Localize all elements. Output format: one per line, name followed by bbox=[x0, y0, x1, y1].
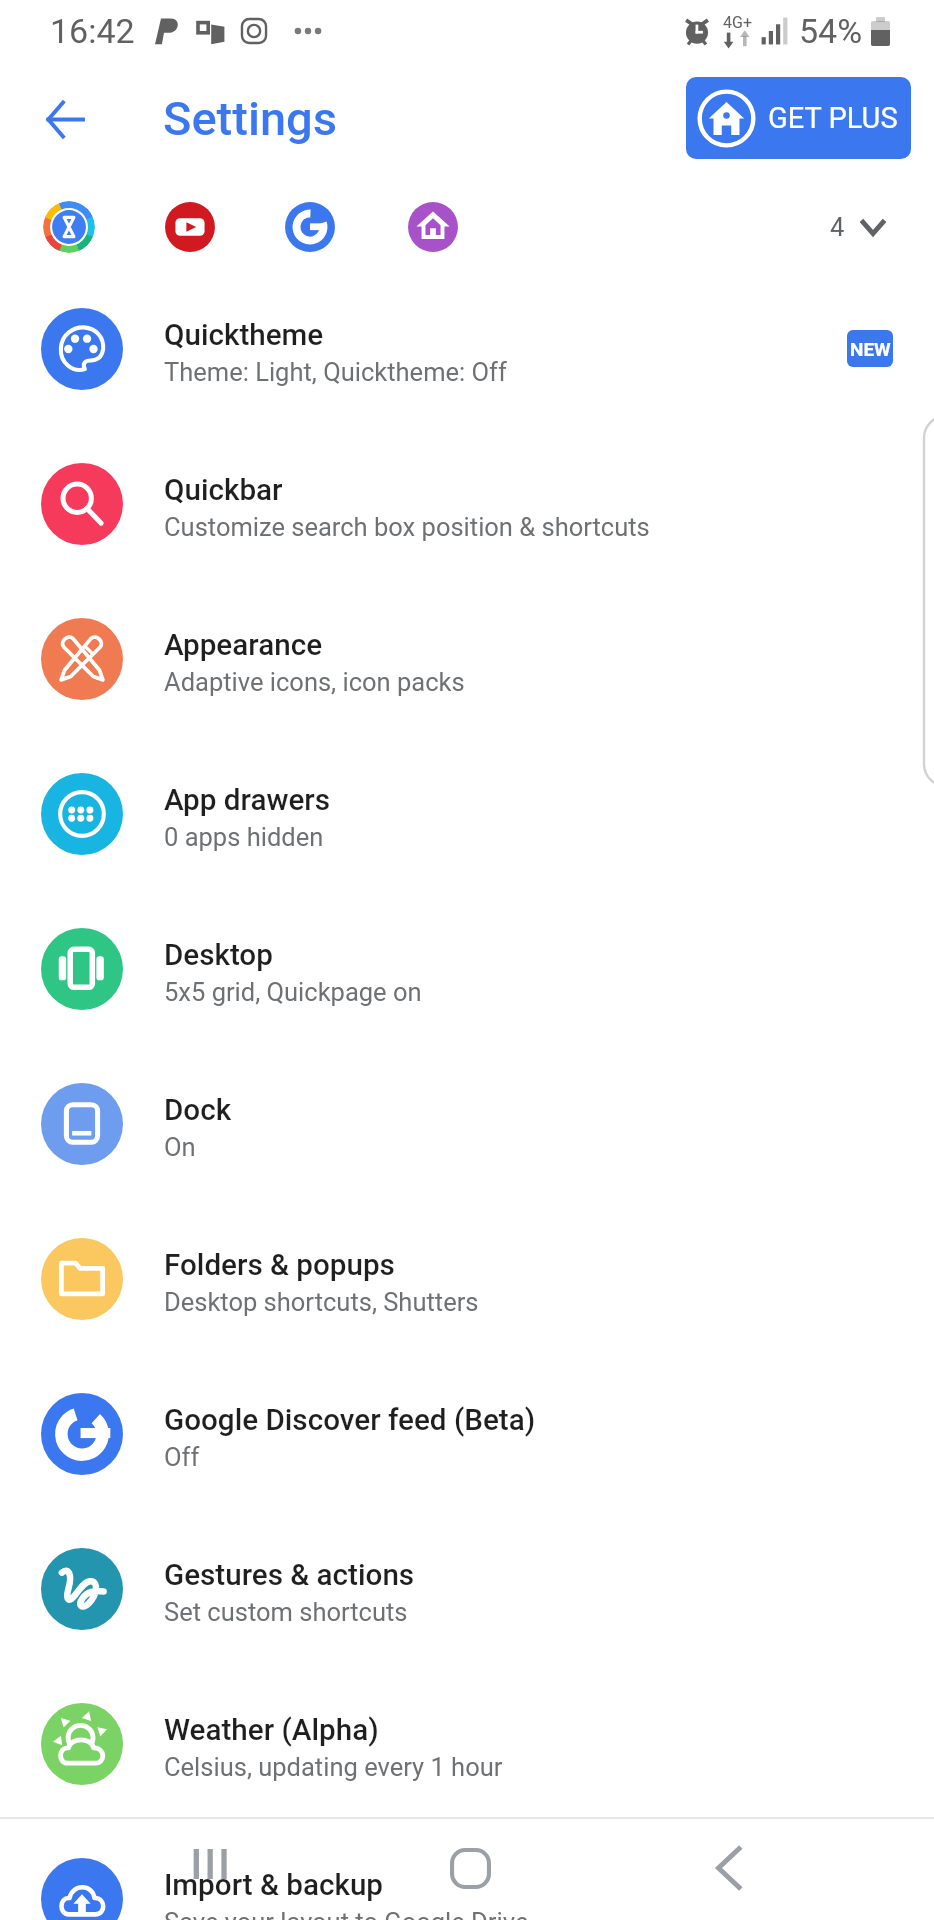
button[interactable]: Dock bbox=[0, 1046, 934, 1201]
staticText: GET PLUS bbox=[768, 101, 898, 135]
staticText: App drawers bbox=[164, 783, 330, 818]
button[interactable]: Quicktheme bbox=[0, 271, 934, 426]
staticText: Dock bbox=[164, 1093, 232, 1128]
button[interactable]: Desktop bbox=[0, 891, 934, 1046]
staticText: Adaptive icons, icon packs bbox=[164, 667, 465, 697]
staticText: Settings bbox=[163, 91, 338, 146]
staticText: 5x5 grid, Quickpage on bbox=[164, 977, 422, 1007]
staticText: Weather (Alpha) bbox=[164, 1713, 379, 1748]
staticText: Theme: Light, Quicktheme: Off bbox=[164, 357, 507, 387]
staticText: 0 apps hidden bbox=[164, 822, 324, 852]
staticText: Save your layout to Google Drive bbox=[164, 1907, 529, 1920]
staticText: Off bbox=[164, 1442, 200, 1472]
button[interactable]: Import & backup bbox=[0, 1821, 934, 1920]
button[interactable]: GET PLUS bbox=[686, 77, 911, 159]
staticText: Quickbar bbox=[164, 473, 283, 508]
staticText: Customize search box position & shortcut… bbox=[164, 512, 650, 542]
button[interactable]: Quickbar bbox=[0, 426, 934, 581]
staticText: 16:42 bbox=[50, 11, 135, 51]
staticText: 4G+ bbox=[723, 13, 752, 32]
staticText: Import & backup bbox=[164, 1868, 384, 1903]
button[interactable]: 4 bbox=[830, 201, 887, 253]
button[interactable]: App drawers bbox=[0, 736, 934, 891]
staticText: Quicktheme bbox=[164, 318, 324, 353]
button[interactable]: YouTube bbox=[164, 201, 216, 253]
staticText: Folders & popups bbox=[164, 1248, 395, 1283]
button[interactable]: Clock app bbox=[43, 201, 95, 253]
button[interactable]: Home bbox=[407, 201, 459, 253]
staticText: Appearance bbox=[164, 628, 323, 663]
button[interactable]: Home bbox=[436, 1834, 504, 1902]
button[interactable]: Folders & popups bbox=[0, 1201, 934, 1356]
staticText: Set custom shortcuts bbox=[164, 1597, 408, 1627]
staticText: Celsius, updating every 1 hour bbox=[164, 1752, 503, 1782]
staticText: Gestures & actions bbox=[164, 1558, 415, 1593]
staticText: NEW bbox=[850, 338, 891, 360]
button[interactable]: Weather (Alpha) bbox=[0, 1666, 934, 1821]
staticText: Desktop bbox=[164, 938, 273, 973]
staticText: 54% bbox=[799, 11, 863, 51]
button[interactable]: Google bbox=[284, 201, 336, 253]
staticText: 4 bbox=[830, 212, 845, 242]
staticText: On bbox=[164, 1132, 196, 1162]
button[interactable]: Back bbox=[26, 81, 102, 157]
button[interactable]: Recents bbox=[175, 1830, 243, 1898]
button[interactable]: Gestures & actions bbox=[0, 1511, 934, 1666]
staticText: Google Discover feed (Beta) bbox=[164, 1403, 536, 1438]
button[interactable]: Appearance bbox=[0, 581, 934, 736]
button[interactable]: Back bbox=[694, 1834, 762, 1902]
button[interactable]: Google Discover feed (Beta) bbox=[0, 1356, 934, 1511]
staticText: Desktop shortcuts, Shutters bbox=[164, 1287, 479, 1317]
